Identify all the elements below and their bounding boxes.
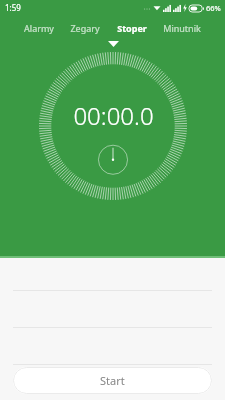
staticText: Stoper [117, 22, 147, 34]
button[interactable]: Zegary [68, 19, 102, 37]
staticText: Zegary [70, 22, 100, 34]
staticText: 1:59 [5, 2, 21, 13]
other: Stopwatch dial [38, 51, 188, 201]
button[interactable]: Minutnik [161, 19, 203, 37]
staticText: Minutnik [163, 22, 201, 34]
button[interactable]: Stoper [115, 19, 149, 37]
staticText: Start [100, 373, 125, 388]
staticText: 66% [206, 3, 221, 13]
button[interactable]: Alarmy [22, 19, 56, 37]
button[interactable]: Start [13, 367, 212, 394]
staticText: Alarmy [24, 22, 54, 34]
staticText: 00:00.0 [73, 99, 154, 132]
